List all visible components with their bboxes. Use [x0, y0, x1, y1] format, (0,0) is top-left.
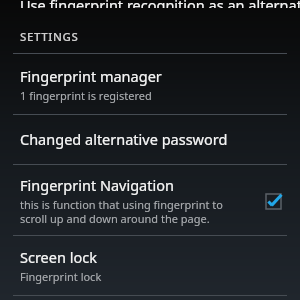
staticText: Fingerprint lock [20, 269, 102, 284]
staticText: this is function that using fingerprint … [20, 197, 223, 226]
button[interactable]: SETTINGS [20, 29, 79, 45]
staticText: Changed alternative password [20, 129, 228, 149]
button[interactable]: Screen lock [0, 236, 300, 295]
staticText: Fingerprint manager [20, 66, 162, 86]
staticText: Use fingerprint recognition as an altern… [20, 0, 300, 8]
button[interactable]: Fingerprint Navigation [0, 165, 300, 235]
button[interactable]: Changed alternative password [0, 115, 300, 164]
button[interactable]: Use fingerprint recognition as an altern… [0, 0, 300, 13]
staticText: Screen lock [20, 247, 97, 267]
staticText: Fingerprint Navigation [20, 175, 174, 195]
staticText: 1 fingerprint is registered [20, 88, 152, 103]
button[interactable]: Fingerprint Navigation toggle, checked [260, 188, 286, 214]
button[interactable]: Fingerprint manager [0, 54, 300, 114]
